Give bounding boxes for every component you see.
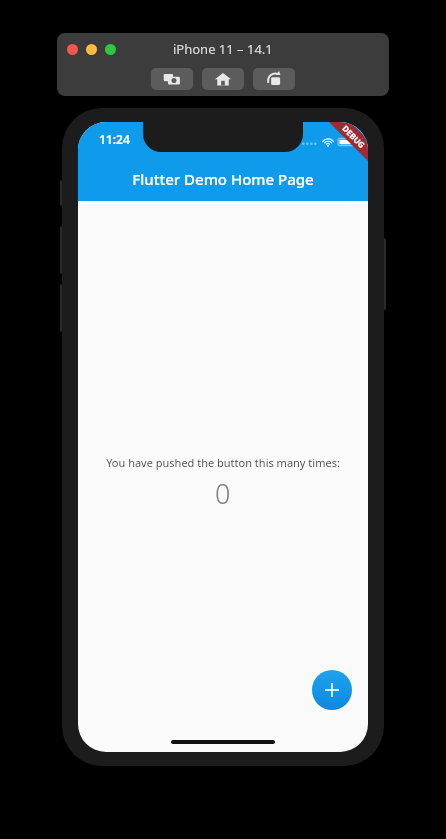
staticText: iPhone 11 – 14.1 xyxy=(173,40,273,58)
staticText: 0 xyxy=(215,475,231,512)
button[interactable]: Rotate xyxy=(253,68,295,90)
button[interactable]: Home xyxy=(202,68,244,90)
button[interactable]: Screenshot xyxy=(151,68,193,90)
staticText: 11:24 xyxy=(99,131,130,147)
button[interactable]: Increment xyxy=(312,670,352,710)
staticText: DEBUG xyxy=(340,123,368,150)
button[interactable]: Minimize xyxy=(86,44,97,55)
staticText: Flutter Demo Home Page xyxy=(132,169,314,189)
button[interactable]: Close xyxy=(67,44,78,55)
button[interactable]: Maximize xyxy=(105,44,116,55)
staticText: You have pushed the button this many tim… xyxy=(106,455,340,470)
